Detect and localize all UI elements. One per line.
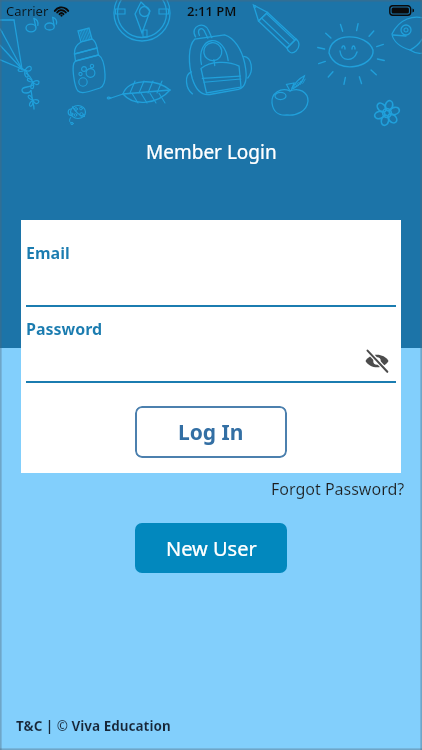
staticText: Member Login xyxy=(146,139,277,165)
staticText: Password xyxy=(26,318,103,340)
button[interactable]: T&C | © Viva Education xyxy=(16,717,171,735)
staticText: Forgot Password? xyxy=(271,478,405,500)
button[interactable]: Toggle password visibility xyxy=(360,344,394,378)
button[interactable]: Forgot Password? xyxy=(271,478,405,500)
staticText: New User xyxy=(166,535,257,562)
button[interactable]: Log In xyxy=(135,406,287,458)
button[interactable]: New User xyxy=(135,523,287,573)
staticText: Email xyxy=(26,242,70,264)
staticText: Carrier xyxy=(6,2,49,20)
staticText: 2:11 PM xyxy=(187,2,237,20)
staticText: Log In xyxy=(178,418,244,447)
staticText: T&C | © Viva Education xyxy=(16,717,171,735)
